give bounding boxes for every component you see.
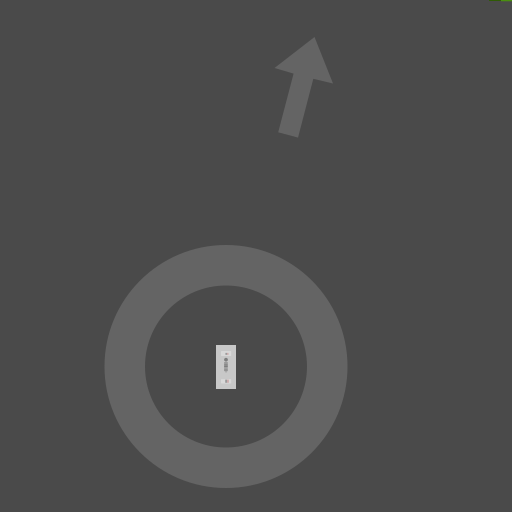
button[interactable]: Share <box>0 0 512 512</box>
